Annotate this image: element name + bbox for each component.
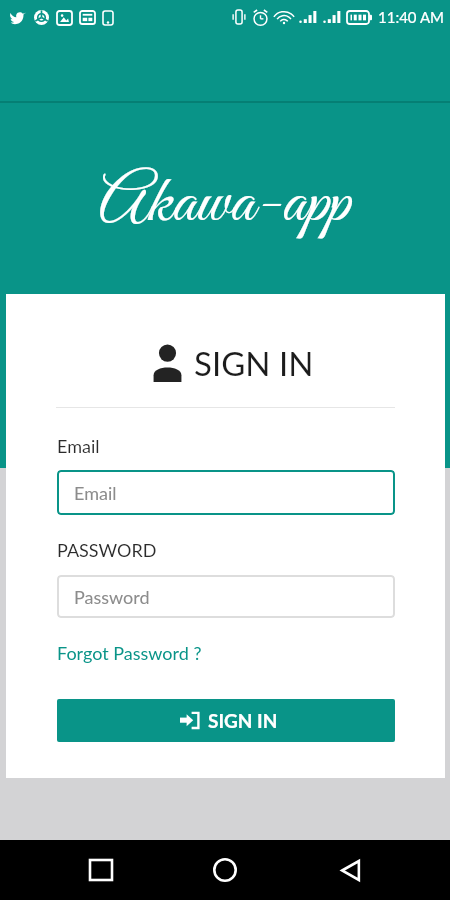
button[interactable]: Home [201,846,249,894]
button[interactable]: Forgot Password ? [57,642,202,664]
staticText: Akawa-app [99,162,351,247]
staticText: Email [74,482,117,504]
staticText: PASSWORD [57,539,157,561]
button[interactable]: SIGN IN [57,699,395,742]
staticText: 11:40 AM [378,8,444,26]
button[interactable]: Back [326,846,374,894]
staticText: SIGN IN [194,343,314,383]
staticText: Forgot Password ? [57,642,202,664]
button[interactable]: Recents [77,846,125,894]
staticText: Password [74,586,150,608]
staticText: Email [57,435,100,457]
button[interactable]: SIGN IN [14,343,450,383]
button[interactable]: Password [57,575,395,618]
staticText: SIGN IN [208,709,278,732]
button[interactable]: Email [57,470,395,515]
